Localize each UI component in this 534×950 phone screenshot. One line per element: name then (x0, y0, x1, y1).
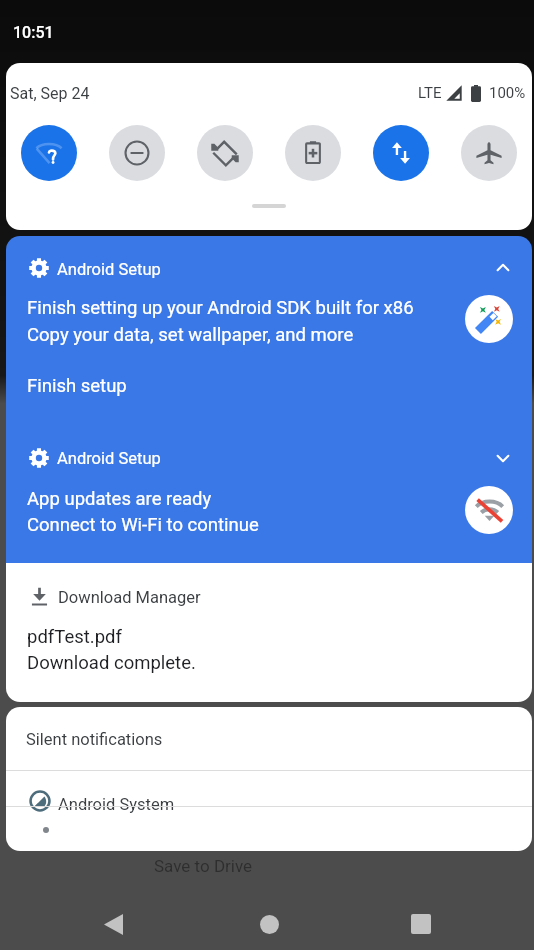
button[interactable]: Mobile data (373, 125, 429, 181)
button[interactable]: Finish setup (27, 375, 127, 397)
staticText: Android Setup (57, 449, 161, 468)
button[interactable]: Recents (387, 898, 455, 950)
staticText: App updates are ready (27, 488, 212, 510)
staticText: Silent notifications (26, 730, 163, 749)
button[interactable]: Back (79, 898, 147, 950)
staticText: 10:51 (13, 23, 54, 42)
staticText: Finish setup (27, 375, 127, 397)
staticText: LTE (418, 84, 442, 102)
staticText: 100% (489, 84, 526, 102)
staticText: Finish setting up your Android SDK built… (27, 297, 414, 319)
button[interactable]: Do Not Disturb (109, 125, 165, 181)
staticText: Download Manager (58, 588, 201, 607)
staticText: Android Setup (57, 260, 161, 279)
button[interactable]: Battery Saver (285, 125, 341, 181)
staticText: Download complete. (27, 652, 196, 674)
button[interactable]: Home (235, 898, 303, 950)
button[interactable]: Airplane mode (461, 125, 517, 181)
staticText: Save to Drive (154, 856, 253, 876)
staticText: Android System (58, 795, 175, 814)
button[interactable]: Expand (483, 438, 523, 478)
staticText: Copy your data, set wallpaper, and more (27, 324, 354, 346)
button[interactable]: Internet (21, 125, 77, 181)
button[interactable]: Auto rotate (197, 125, 253, 181)
staticText: Connect to Wi-Fi to continue (27, 514, 259, 536)
button[interactable]: Collapse (483, 248, 523, 288)
staticText: pdfTest.pdf (27, 626, 122, 648)
staticText: Sat, Sep 24 (10, 84, 90, 103)
